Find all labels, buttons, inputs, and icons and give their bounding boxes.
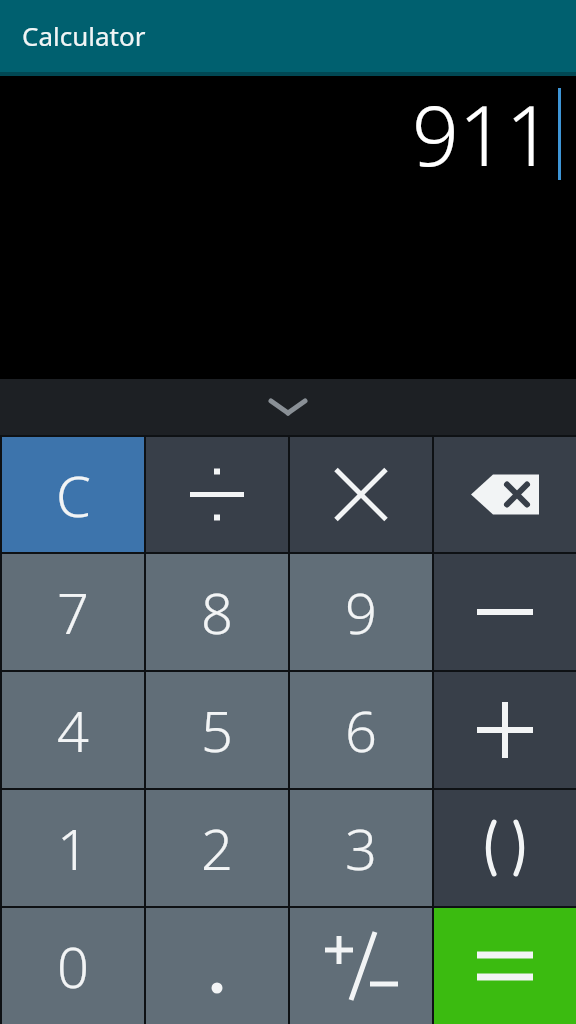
staticText: Calculator xyxy=(22,18,146,53)
button[interactable]: 0 xyxy=(2,908,144,1024)
button[interactable]: 1 xyxy=(2,790,144,906)
button[interactable]: Plus minus sign xyxy=(290,908,432,1024)
staticText: 1 xyxy=(57,810,89,886)
button[interactable]: Decimal point xyxy=(146,908,288,1024)
button[interactable]: Backspace xyxy=(434,437,576,552)
staticText: 0 xyxy=(57,928,89,1004)
staticText: 7 xyxy=(57,574,89,650)
staticText: 4 xyxy=(57,692,89,768)
button[interactable]: Collapse history xyxy=(0,379,576,435)
button[interactable]: 6 xyxy=(290,672,432,788)
button[interactable]: 2 xyxy=(146,790,288,906)
button[interactable]: Equals xyxy=(434,908,576,1024)
staticText: 6 xyxy=(345,692,377,768)
button[interactable]: Minus xyxy=(434,554,576,670)
button[interactable]: Calculator xyxy=(0,0,576,72)
button[interactable]: 3 xyxy=(290,790,432,906)
staticText: 9 xyxy=(345,574,377,650)
staticText: 8 xyxy=(201,574,233,650)
staticText: C xyxy=(56,457,91,533)
button[interactable]: 8 xyxy=(146,554,288,670)
button[interactable]: Parentheses xyxy=(434,790,576,906)
button[interactable]: Clear xyxy=(2,437,144,552)
staticText: 5 xyxy=(201,692,233,768)
button[interactable]: 7 xyxy=(2,554,144,670)
button[interactable]: Plus xyxy=(434,672,576,788)
staticText: 911 xyxy=(412,78,553,190)
staticText: 3 xyxy=(345,810,377,886)
button[interactable]: 9 xyxy=(290,554,432,670)
staticText: 2 xyxy=(201,810,233,886)
button[interactable]: Divide xyxy=(146,437,288,552)
button[interactable]: 4 xyxy=(2,672,144,788)
button[interactable]: 5 xyxy=(146,672,288,788)
button[interactable]: Multiply xyxy=(290,437,432,552)
